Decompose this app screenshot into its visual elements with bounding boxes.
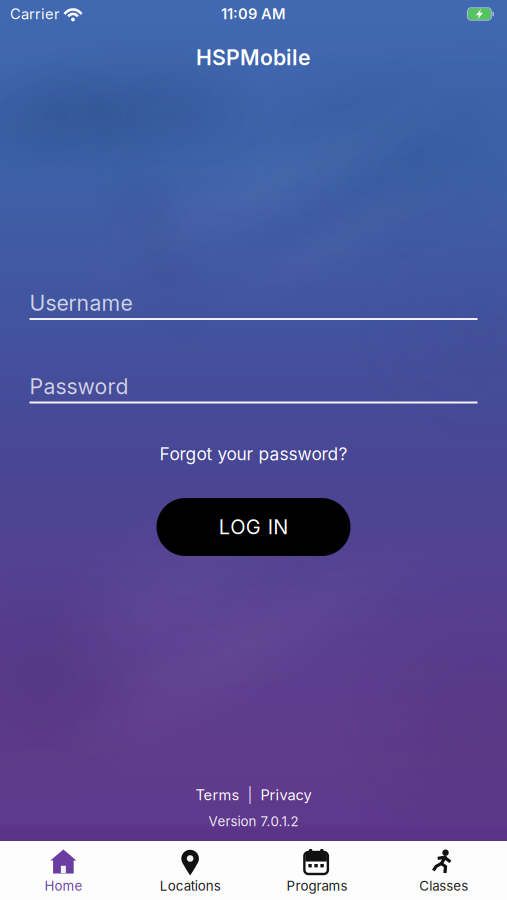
button[interactable]: Privacy: [260, 786, 311, 804]
button[interactable]: Password: [29, 372, 477, 403]
staticText: Locations: [160, 878, 221, 894]
button[interactable]: Terms: [195, 786, 239, 804]
button[interactable]: LOG IN: [156, 498, 350, 556]
staticText: Forgot your password?: [159, 444, 347, 464]
button[interactable]: Username: [29, 289, 477, 320]
button[interactable]: Locations: [127, 841, 254, 900]
staticText: Terms: [195, 786, 239, 804]
staticText: 11:09 AM: [221, 5, 286, 23]
staticText: Username: [29, 290, 132, 316]
button[interactable]: Home: [0, 841, 127, 900]
button[interactable]: Programs: [253, 841, 380, 900]
staticText: Version 7.0.1.2: [208, 814, 298, 829]
button[interactable]: Forgot your password?: [159, 444, 347, 464]
button[interactable]: Classes: [380, 841, 507, 900]
staticText: HSPMobile: [196, 45, 311, 70]
staticText: |: [247, 786, 252, 804]
staticText: LOG IN: [219, 515, 288, 539]
staticText: Home: [44, 878, 82, 894]
staticText: Privacy: [260, 786, 311, 804]
staticText: Classes: [419, 878, 468, 894]
staticText: Password: [29, 374, 128, 399]
staticText: Carrier: [10, 5, 60, 23]
staticText: Programs: [286, 878, 347, 894]
